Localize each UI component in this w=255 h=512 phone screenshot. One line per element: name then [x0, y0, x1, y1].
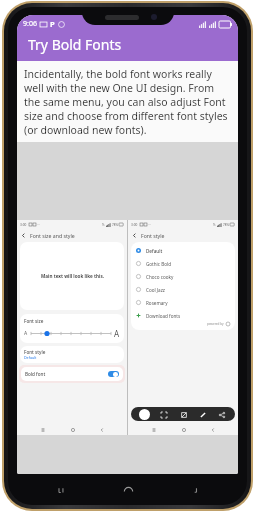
staticText: P: [50, 19, 55, 29]
staticText: Font size and style: [30, 232, 75, 239]
staticText: Font style: [141, 232, 165, 239]
button[interactable]: Back: [209, 426, 216, 433]
button[interactable]: Back: [181, 477, 207, 503]
button[interactable]: Home: [115, 477, 141, 503]
staticText: %: [213, 223, 216, 227]
button[interactable]: Rosemary: [131, 296, 235, 309]
staticText: Rosemary: [146, 300, 168, 306]
button[interactable]: Download fonts: [131, 309, 235, 322]
button[interactable]: Home: [180, 426, 187, 433]
staticText: Main text will look like this.: [41, 273, 104, 279]
button[interactable]: [31, 330, 111, 337]
staticText: Bold font: [25, 371, 46, 377]
button[interactable]: Recents: [150, 426, 157, 433]
staticText: Choco cooky: [146, 274, 174, 280]
button[interactable]: Flip: [178, 409, 189, 420]
staticText: 3:00: [131, 223, 138, 227]
button[interactable]: Crop: [158, 409, 169, 420]
staticText: 78%: [112, 223, 118, 227]
button[interactable]: Home: [69, 426, 76, 433]
button[interactable]: Recents: [48, 477, 74, 503]
button[interactable]: Default: [131, 244, 235, 257]
staticText: %: [102, 223, 105, 227]
button[interactable]: Thumbnail: [139, 409, 150, 420]
button[interactable]: Bold font: [21, 367, 123, 381]
staticText: Font style: [24, 349, 46, 355]
button[interactable]: Draw: [197, 409, 208, 420]
staticText: 3:00: [20, 223, 27, 227]
staticText: powered by: [207, 322, 224, 326]
staticText: Default: [24, 355, 37, 360]
button[interactable]: Gothic Bold: [131, 257, 235, 270]
staticText: ···: [148, 223, 151, 227]
staticText: A: [114, 328, 120, 339]
button[interactable]: Share: [216, 409, 227, 420]
staticText: A: [24, 330, 28, 337]
staticText: Default: [146, 248, 163, 254]
staticText: 9:06: [23, 19, 37, 29]
staticText: ···: [37, 223, 40, 227]
staticText: Cool Jazz: [146, 287, 165, 293]
button[interactable]: Font style: [20, 346, 124, 363]
staticText: Try Bold Fonts: [28, 35, 122, 54]
staticText: Gothic Bold: [146, 261, 171, 267]
staticText: Download fonts: [146, 313, 181, 319]
staticText: Font size: [24, 318, 44, 324]
button[interactable]: Cool Jazz: [131, 283, 235, 296]
button[interactable]: Back: [98, 426, 105, 433]
button[interactable]: Recents: [39, 426, 46, 433]
staticText: 78%: [223, 223, 229, 227]
button[interactable]: Choco cooky: [131, 270, 235, 283]
staticText: Incidentally, the bold font works really…: [24, 67, 231, 137]
